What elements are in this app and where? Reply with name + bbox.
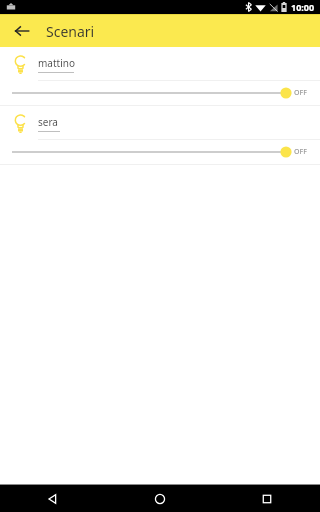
staticText: OFF: [294, 88, 307, 98]
staticText: OFF: [294, 147, 307, 157]
button[interactable]: Back: [0, 485, 106, 512]
button[interactable]: sera: [0, 106, 320, 139]
button[interactable]: Home: [106, 485, 213, 512]
button[interactable]: mattino: [0, 47, 320, 80]
button[interactable]: OFF: [0, 140, 320, 164]
staticText: mattino: [38, 56, 75, 70]
button[interactable]: Recent apps: [213, 485, 320, 512]
staticText: Scenari: [46, 22, 95, 41]
button[interactable]: Back: [8, 17, 36, 45]
staticText: sera: [38, 115, 58, 129]
button[interactable]: OFF: [0, 81, 320, 105]
staticText: 10:00: [291, 1, 315, 13]
